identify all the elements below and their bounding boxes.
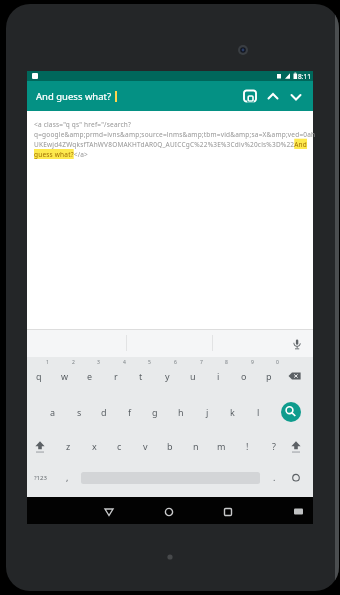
staticText: 8:11 — [298, 72, 311, 81]
staticText: q — [36, 370, 42, 382]
staticText: 3 — [97, 359, 100, 366]
staticText: m — [217, 440, 226, 452]
staticText: p — [266, 370, 272, 382]
staticText: 0 — [276, 359, 279, 366]
staticText: h — [178, 406, 184, 418]
staticText: n — [193, 440, 199, 452]
staticText: f — [128, 406, 132, 418]
staticText: l — [257, 406, 260, 418]
staticText: <a class="q qs" href="/search? q=google&… — [34, 120, 316, 159]
staticText: s — [77, 406, 82, 418]
staticText: , — [66, 471, 69, 483]
staticText: 8 — [225, 359, 228, 366]
staticText: b — [167, 440, 173, 452]
staticText: 4 — [123, 359, 126, 366]
staticText: e — [87, 370, 93, 382]
staticText: t — [139, 370, 143, 382]
staticText: x — [92, 440, 97, 452]
staticText: And guess what? — [36, 90, 112, 103]
staticText: ?123 — [34, 474, 47, 482]
staticText: u — [190, 370, 196, 382]
staticText: 6 — [174, 359, 177, 366]
staticText: 9 — [251, 359, 254, 366]
staticText: z — [66, 440, 71, 452]
staticText: v — [143, 440, 148, 452]
staticText: a — [50, 406, 56, 418]
staticText: 1 — [46, 359, 49, 366]
staticText: 2 — [72, 359, 75, 366]
staticText: g — [152, 406, 158, 418]
staticText: w — [61, 370, 69, 382]
staticText: i — [217, 370, 220, 382]
staticText: y — [165, 370, 170, 382]
staticText: ! — [246, 440, 249, 452]
staticText: r — [114, 370, 118, 382]
staticText: c — [117, 440, 122, 452]
staticText: j — [206, 406, 209, 418]
staticText: o — [241, 370, 247, 382]
staticText: . — [273, 471, 276, 483]
staticText: 5 — [148, 359, 151, 366]
staticText: ? — [272, 440, 276, 452]
staticText: d — [101, 406, 107, 418]
staticText: k — [230, 406, 235, 418]
staticText: 7 — [200, 359, 203, 366]
